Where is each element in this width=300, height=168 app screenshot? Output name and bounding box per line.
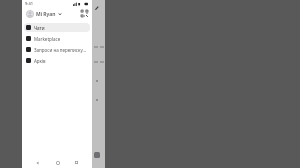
staticText: Mi Ryan [36, 11, 56, 18]
button[interactable]: Marketplace [24, 34, 90, 43]
button[interactable]: Home [53, 158, 62, 167]
staticText: Запроси на переписку... [34, 47, 87, 53]
button[interactable]: Recent apps [72, 158, 81, 167]
staticText: Архів [34, 58, 46, 64]
button[interactable]: Mi Ryan [25, 9, 63, 19]
other: Compose [94, 5, 100, 11]
button[interactable]: Архів [24, 56, 90, 65]
button[interactable]: Чати [24, 23, 90, 32]
button[interactable]: Back [33, 158, 42, 167]
button[interactable]: Запроси на переписку... [24, 45, 90, 54]
staticText: 9:41 [25, 1, 33, 6]
staticText: Marketplace [34, 36, 61, 42]
button[interactable]: Scan QR code [80, 9, 89, 18]
staticText: Чати [34, 25, 45, 31]
